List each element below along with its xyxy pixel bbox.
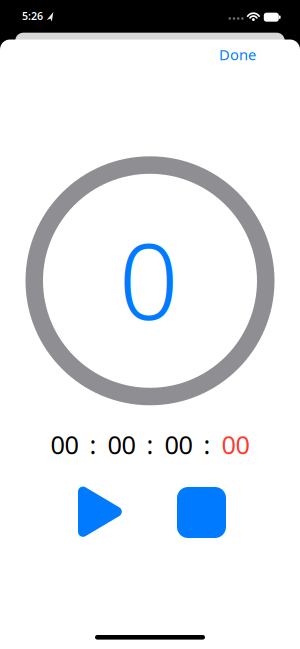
staticText: 5:26: [22, 9, 43, 23]
staticText: 0: [118, 209, 178, 349]
staticText: :: [146, 427, 153, 461]
staticText: 00: [164, 427, 192, 461]
button[interactable]: Start: [70, 482, 130, 542]
button[interactable]: Done: [211, 37, 264, 72]
staticText: 00: [221, 427, 249, 461]
staticText: :: [203, 427, 210, 461]
staticText: 00: [107, 427, 135, 461]
staticText: 00: [50, 427, 78, 461]
staticText: :: [89, 427, 96, 461]
staticText: Done: [219, 45, 256, 64]
button[interactable]: Stop: [171, 482, 231, 542]
